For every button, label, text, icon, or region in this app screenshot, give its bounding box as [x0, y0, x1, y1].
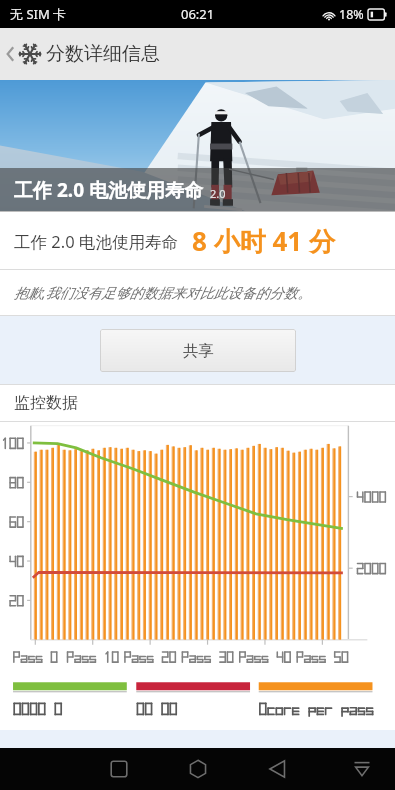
button[interactable]: Back	[263, 754, 293, 784]
staticText: 共享	[183, 341, 214, 361]
button[interactable]: Hide navigation bar	[347, 754, 377, 784]
button[interactable]: Back	[0, 36, 50, 72]
staticText: 无 SIM 卡	[10, 5, 67, 23]
staticText: 18%	[339, 6, 364, 23]
staticText: 分数详细信息	[46, 42, 160, 66]
button[interactable]: 共享	[100, 329, 296, 372]
staticText: 2.0	[210, 186, 226, 201]
staticText: 8 小时 41 分	[192, 223, 335, 259]
staticText: 工作 2.0 电池使用寿命	[14, 177, 203, 203]
staticText: 监控数据	[14, 393, 78, 413]
staticText: 工作 2.0 电池使用寿命	[14, 230, 178, 253]
staticText: 06:21	[181, 5, 215, 23]
staticText: 抱歉,我们没有足够的数据来对比此设备的分数。	[14, 283, 312, 302]
button[interactable]: Home	[183, 754, 213, 784]
button[interactable]: Recents	[104, 754, 134, 784]
